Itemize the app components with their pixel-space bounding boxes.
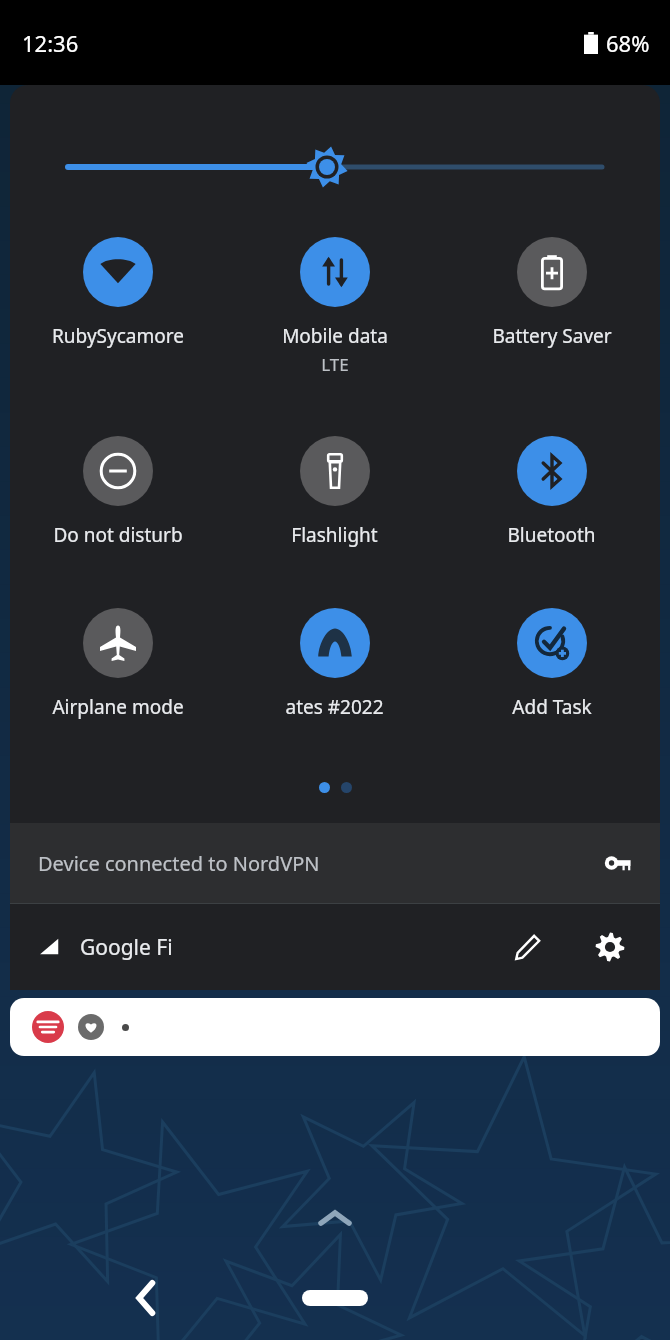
- button[interactable]: Battery Saver: [443, 237, 660, 349]
- button[interactable]: Add Task: [443, 608, 660, 720]
- button[interactable]: Flashlight: [226, 436, 443, 548]
- staticText: Bluetooth: [507, 522, 596, 548]
- button[interactable]: Home: [302, 1290, 368, 1306]
- staticText: LTE: [321, 353, 349, 376]
- button[interactable]: Bluetooth: [443, 436, 660, 548]
- other: VPN settings: [604, 849, 632, 877]
- button[interactable]: Mobile data: [226, 237, 443, 376]
- button[interactable]: Edit: [506, 925, 550, 969]
- button[interactable]: ates #2022: [226, 608, 443, 720]
- button[interactable]: Do not disturb: [10, 436, 226, 548]
- button[interactable]: [10, 998, 660, 1056]
- staticText: Airplane mode: [52, 694, 184, 720]
- button[interactable]: [10, 147, 660, 187]
- staticText: 68%: [606, 28, 650, 58]
- staticText: RubySycamore: [52, 323, 184, 349]
- staticText: Flashlight: [291, 522, 378, 548]
- staticText: Google Fi: [80, 933, 173, 962]
- staticText: ates #2022: [285, 694, 384, 720]
- staticText: Battery Saver: [492, 323, 612, 349]
- button[interactable]: Device connected to NordVPN: [10, 823, 660, 903]
- staticText: Add Task: [512, 694, 592, 720]
- button[interactable]: RubySycamore: [10, 237, 226, 349]
- button[interactable]: Settings: [588, 925, 632, 969]
- staticText: 12:36: [22, 28, 79, 58]
- staticText: Device connected to NordVPN: [38, 850, 320, 877]
- staticText: Mobile data: [282, 323, 388, 349]
- button[interactable]: Back: [120, 1272, 172, 1324]
- button[interactable]: Airplane mode: [10, 608, 226, 720]
- staticText: Do not disturb: [53, 522, 183, 548]
- button[interactable]: Expand notifications: [0, 1196, 670, 1240]
